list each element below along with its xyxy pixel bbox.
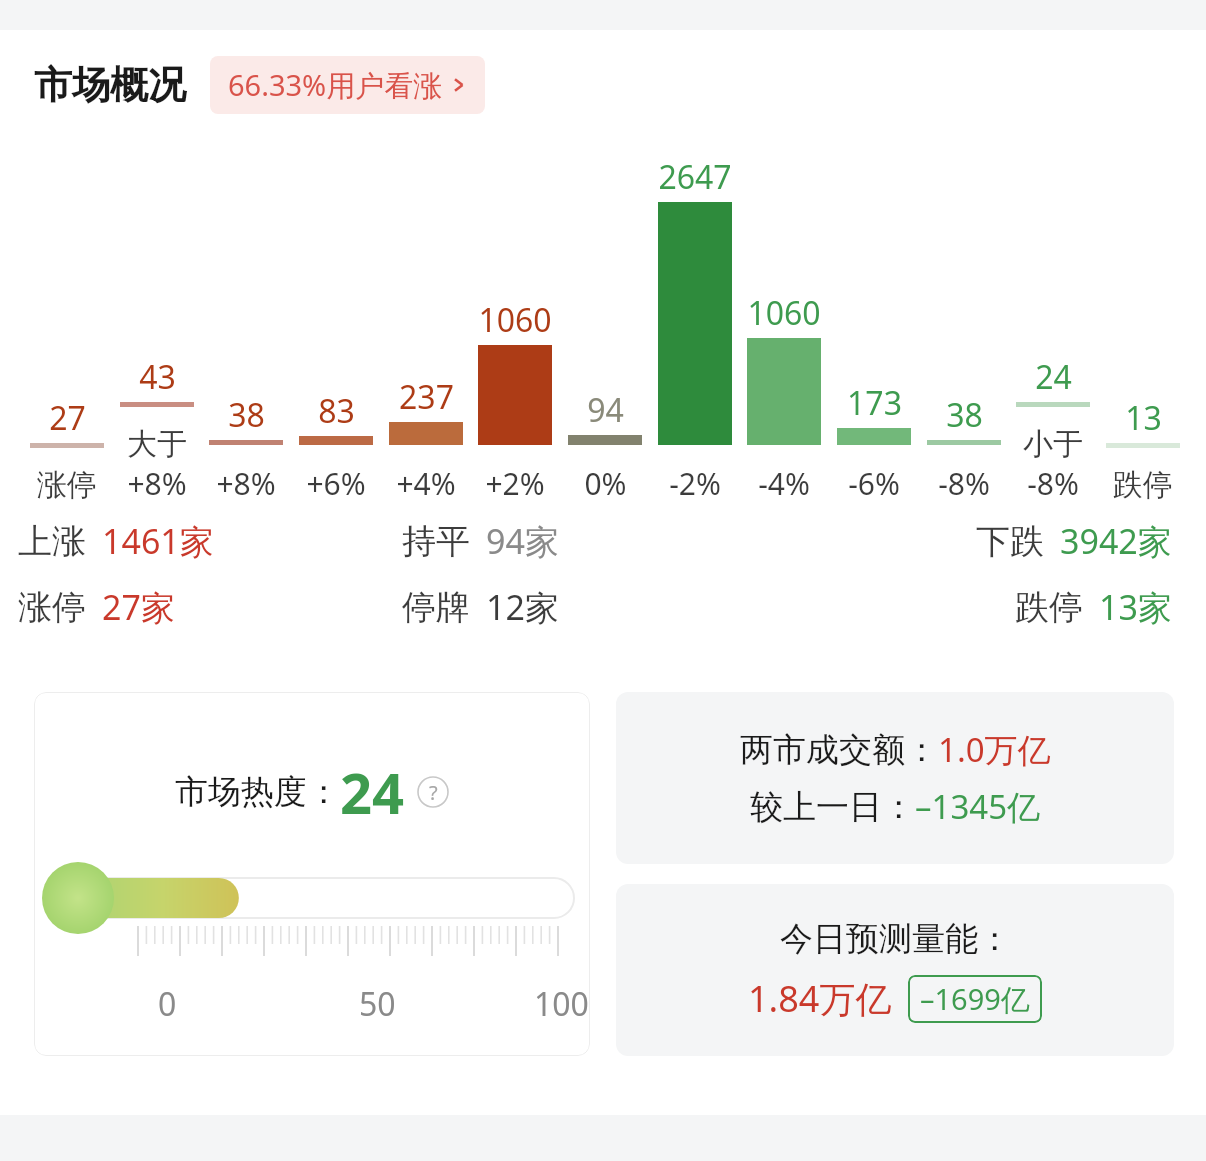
staticText: 涨停 [18, 586, 86, 629]
staticText: 0% [584, 463, 627, 504]
staticText: 1060 [747, 291, 821, 335]
staticText: 2647 [658, 155, 732, 199]
staticText: 94 [587, 388, 624, 432]
staticText: 跌停 [1015, 586, 1083, 629]
staticText: -6% [848, 463, 900, 504]
staticText: 两市成交额： [740, 729, 938, 771]
staticText: +8% [216, 463, 276, 504]
staticText: 24 [1035, 355, 1072, 399]
staticText: 12家 [486, 584, 559, 630]
staticText: 13家 [1099, 584, 1172, 630]
staticText: 24 [340, 754, 405, 830]
staticText: 较上一日： [750, 786, 915, 828]
staticText: -2% [669, 463, 721, 504]
staticText: 大于 [127, 425, 187, 463]
staticText: 83 [318, 389, 355, 433]
staticText: 市场概况 [34, 61, 186, 109]
button[interactable]: 市场热度： [34, 692, 590, 1056]
staticText: +8% [127, 463, 187, 504]
button[interactable]: 66.33%用户看涨 [210, 56, 485, 114]
staticText: 50 [359, 982, 396, 1026]
staticText: 173 [847, 381, 902, 425]
staticText: 1.0万亿 [938, 727, 1051, 772]
staticText: 27 [49, 396, 86, 440]
staticText: 38 [946, 393, 983, 437]
staticText: +4% [396, 463, 456, 504]
staticText: 38 [228, 393, 265, 437]
staticText: 跌停 [1113, 466, 1173, 504]
staticText: +6% [306, 463, 366, 504]
staticText: 涨停 [37, 466, 97, 504]
staticText: –1699亿 [920, 979, 1030, 1019]
staticText: 0 [158, 982, 177, 1026]
staticText: 94家 [486, 518, 559, 564]
button[interactable]: 今日预测量能： [616, 884, 1174, 1056]
staticText: 43 [139, 355, 176, 399]
staticText: 66.33%用户看涨 [228, 65, 443, 105]
staticText: -8% [938, 463, 990, 504]
staticText: 100 [534, 982, 589, 1026]
staticText: 3942家 [1060, 518, 1172, 564]
staticText: 下跌 [976, 520, 1044, 563]
staticText: –1345亿 [915, 784, 1041, 829]
staticText: 1.84万亿 [748, 974, 892, 1023]
staticText: 小于 [1023, 425, 1083, 463]
staticText: 市场热度： [175, 771, 340, 813]
staticText: 27家 [102, 584, 175, 630]
staticText: 持平 [402, 520, 470, 563]
staticText: 上涨 [18, 520, 86, 563]
staticText: -8% [1027, 463, 1079, 504]
staticText: 今日预测量能： [780, 918, 1011, 960]
staticText: -4% [758, 463, 810, 504]
staticText: 1461家 [102, 518, 214, 564]
button[interactable]: Help about market heat [417, 776, 449, 808]
staticText: ? [429, 779, 438, 806]
staticText: 13 [1125, 396, 1162, 440]
staticText: 1060 [478, 298, 552, 342]
staticText: +2% [485, 463, 545, 504]
staticText: 237 [399, 375, 454, 419]
button[interactable]: 两市成交额： [616, 692, 1174, 864]
staticText: 停牌 [402, 586, 470, 629]
